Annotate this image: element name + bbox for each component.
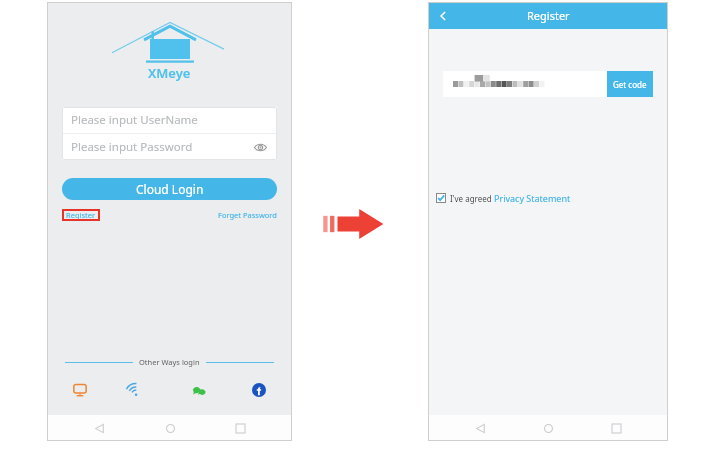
button[interactable]: Cloud Login: [62, 178, 277, 200]
staticText: I've agreed: [450, 193, 494, 204]
button[interactable]: Recents: [606, 418, 626, 438]
staticText: Forget Password: [218, 210, 277, 220]
button[interactable]: Local device login: [69, 379, 91, 401]
button[interactable]: Recents: [230, 418, 250, 438]
staticText: Please input UserName: [71, 112, 198, 128]
button[interactable]: Home: [538, 418, 558, 438]
staticText: Register: [66, 210, 96, 220]
staticText: Cloud Login: [136, 181, 204, 197]
button[interactable]: I've agreed: [436, 192, 660, 204]
staticText: XMeye: [148, 64, 191, 82]
button[interactable]: WeChat login: [188, 379, 210, 401]
button[interactable]: Please input UserName: [62, 107, 277, 133]
button[interactable]: Home: [160, 418, 180, 438]
button[interactable]: Forget Password: [218, 210, 277, 220]
button[interactable]: Facebook login: [248, 379, 270, 401]
staticText: Register: [527, 8, 570, 23]
button[interactable]: Please input Password: [62, 134, 277, 160]
button[interactable]: Get code: [607, 71, 653, 97]
button[interactable]: Back: [432, 5, 454, 27]
staticText: Get code: [613, 79, 647, 90]
staticText: Please input Password: [71, 139, 193, 155]
button[interactable]: Show password: [251, 138, 269, 156]
button[interactable]: [443, 71, 607, 97]
staticText: Privacy Statement: [494, 192, 571, 204]
button[interactable]: Sina Weibo login: [129, 379, 151, 401]
button[interactable]: Back: [89, 418, 109, 438]
staticText: Other Ways login: [139, 357, 200, 367]
button[interactable]: Back: [470, 418, 490, 438]
button[interactable]: Register: [66, 210, 96, 220]
